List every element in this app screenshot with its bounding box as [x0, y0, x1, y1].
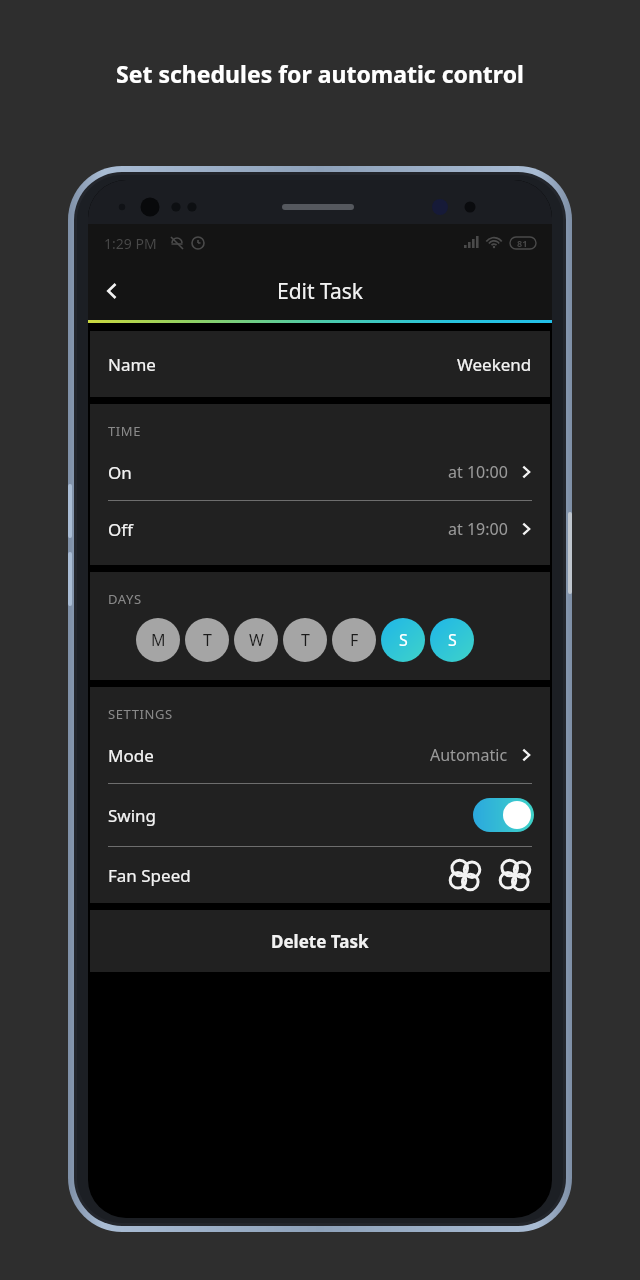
staticText: at 19:00 — [448, 518, 508, 540]
staticText: SETTINGS — [108, 705, 173, 723]
staticText: at 10:00 — [448, 461, 508, 483]
staticText: 81 — [517, 237, 528, 249]
staticText: Weekend — [457, 353, 532, 376]
staticText: DAYS — [108, 590, 142, 608]
button[interactable]: Off — [90, 501, 550, 557]
button[interactable]: Fan speed high — [498, 858, 532, 892]
staticText: TIME — [108, 422, 142, 440]
button[interactable]: Mode — [90, 727, 550, 783]
button[interactable]: Delete Task — [90, 910, 550, 972]
button[interactable]: Back — [88, 267, 136, 315]
staticText: Name — [108, 353, 156, 376]
staticText: Off — [108, 518, 133, 541]
staticText: S — [448, 629, 457, 651]
staticText: W — [249, 629, 264, 651]
button[interactable]: Swing — [90, 784, 550, 846]
staticText: Swing — [108, 804, 157, 827]
button[interactable]: M — [136, 618, 180, 662]
staticText: M — [151, 629, 166, 651]
staticText: Automatic — [430, 744, 508, 766]
button[interactable]: On — [90, 444, 550, 500]
staticText: Fan Speed — [108, 864, 191, 887]
button[interactable]: F — [332, 618, 376, 662]
button[interactable]: S — [430, 618, 474, 662]
staticText: On — [108, 461, 132, 484]
staticText: Mode — [108, 744, 154, 767]
button[interactable]: W — [234, 618, 278, 662]
button[interactable]: Name — [90, 331, 550, 397]
staticText: 1:29 PM — [104, 234, 157, 253]
staticText: T — [203, 629, 212, 651]
staticText: S — [399, 629, 408, 651]
button[interactable]: T — [283, 618, 327, 662]
staticText: Delete Task — [271, 930, 369, 953]
staticText: F — [350, 629, 359, 651]
button[interactable]: T — [185, 618, 229, 662]
button[interactable]: S — [381, 618, 425, 662]
staticText: Set schedules for automatic control — [0, 58, 640, 89]
button[interactable]: Fan speed low — [448, 858, 482, 892]
staticText: T — [301, 629, 310, 651]
staticText: Edit Task — [88, 277, 552, 306]
